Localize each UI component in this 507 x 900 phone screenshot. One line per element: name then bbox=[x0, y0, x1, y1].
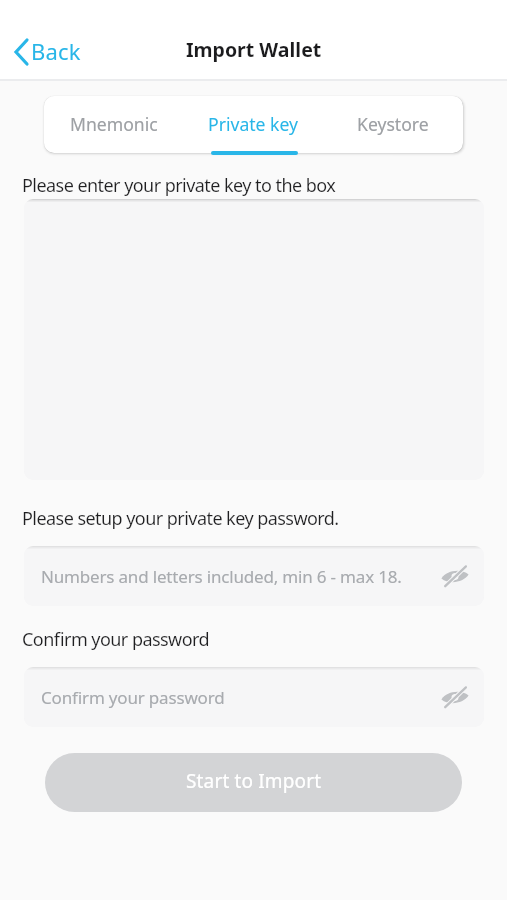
button[interactable]: Numbers and letters included, min 6 - ma… bbox=[24, 546, 484, 606]
button[interactable]: Mnemonic bbox=[44, 96, 183, 153]
staticText: Private key bbox=[208, 112, 299, 136]
staticText: Mnemonic bbox=[70, 112, 158, 136]
staticText: Start to Import bbox=[186, 768, 322, 794]
button[interactable]: Keystore bbox=[323, 96, 463, 153]
button[interactable]: Toggle password visibility bbox=[438, 559, 472, 593]
staticText: Please enter your private key to the box bbox=[22, 173, 336, 198]
button[interactable]: Toggle password visibility bbox=[438, 680, 472, 714]
button[interactable]: Confirm your password bbox=[24, 667, 484, 727]
staticText: Confirm your password bbox=[22, 627, 210, 652]
button[interactable]: Back bbox=[9, 31, 86, 73]
staticText: Please setup your private key password. bbox=[22, 506, 339, 531]
button[interactable]: Private key bbox=[183, 96, 323, 153]
button[interactable]: Start to Import bbox=[45, 753, 462, 812]
staticText: Import Wallet bbox=[186, 36, 322, 63]
staticText: Keystore bbox=[357, 112, 429, 136]
staticText: Back bbox=[31, 36, 81, 66]
staticText: Numbers and letters included, min 6 - ma… bbox=[41, 565, 402, 588]
staticText: Confirm your password bbox=[41, 686, 225, 709]
